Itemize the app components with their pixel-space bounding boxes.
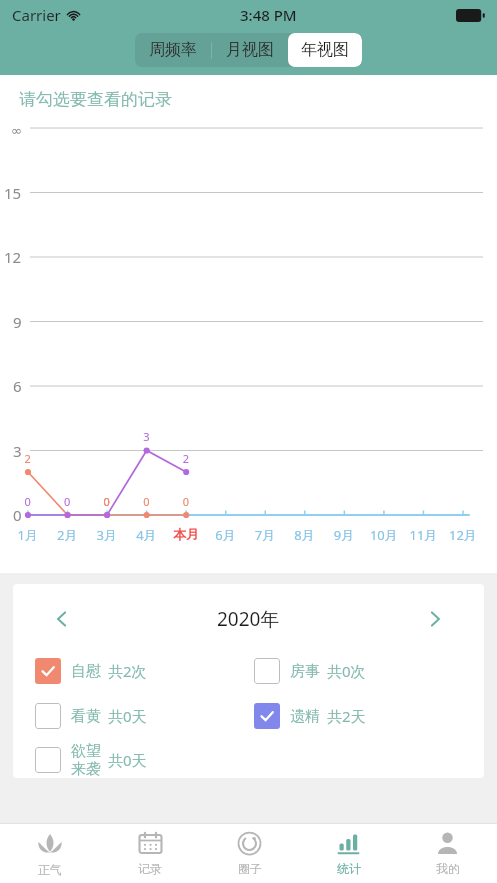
staticText: 月视图: [226, 40, 274, 60]
button[interactable]: 我的: [398, 824, 497, 883]
button[interactable]: 下一年: [418, 602, 452, 636]
staticText: 看黄: [71, 707, 101, 726]
staticText: 年视图: [301, 40, 349, 60]
button[interactable]: 周频率: [135, 33, 211, 67]
staticText: 自慰: [71, 662, 101, 681]
staticText: 遗精: [290, 707, 320, 726]
staticText: 正气: [38, 862, 62, 877]
staticText: 欲望 来袭: [71, 742, 101, 778]
button[interactable]: 房事: [254, 658, 474, 684]
staticText: 圈子: [238, 861, 262, 876]
button[interactable]: 看黄: [35, 703, 254, 729]
staticText: 共0天: [108, 750, 147, 770]
staticText: 2020年: [217, 606, 280, 632]
staticText: 3:48 PM: [240, 5, 297, 25]
staticText: 周频率: [149, 40, 197, 60]
staticText: 共0次: [327, 661, 366, 681]
button[interactable]: 欲望 来袭: [35, 742, 254, 778]
button[interactable]: 年视图: [288, 33, 362, 67]
button[interactable]: 上一年: [45, 602, 79, 636]
button[interactable]: 统计: [299, 824, 398, 883]
staticText: 统计: [337, 861, 361, 876]
button[interactable]: 月视图: [212, 33, 288, 67]
button[interactable]: 记录: [100, 824, 200, 883]
button[interactable]: 圈子: [200, 824, 299, 883]
staticText: 房事: [290, 662, 320, 681]
staticText: 我的: [436, 861, 460, 876]
button[interactable]: 遗精: [254, 703, 474, 729]
staticText: 共0天: [108, 706, 147, 726]
staticText: 共2次: [108, 661, 147, 681]
staticText: 请勾选要查看的记录: [19, 89, 172, 110]
staticText: 记录: [138, 861, 162, 876]
staticText: Carrier: [12, 5, 61, 25]
button[interactable]: 自慰: [35, 658, 254, 684]
button[interactable]: 正气: [0, 824, 100, 883]
staticText: 共2天: [327, 706, 366, 726]
